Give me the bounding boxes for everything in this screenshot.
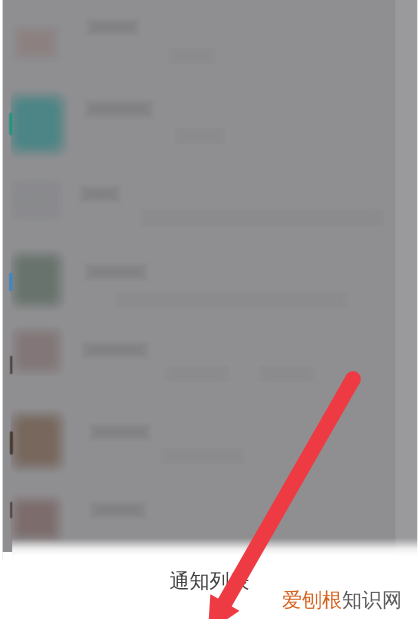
staticText: 知识网 xyxy=(342,588,402,612)
staticText: 通知列表 xyxy=(169,569,249,593)
staticText: 爱刨根 xyxy=(282,588,342,612)
